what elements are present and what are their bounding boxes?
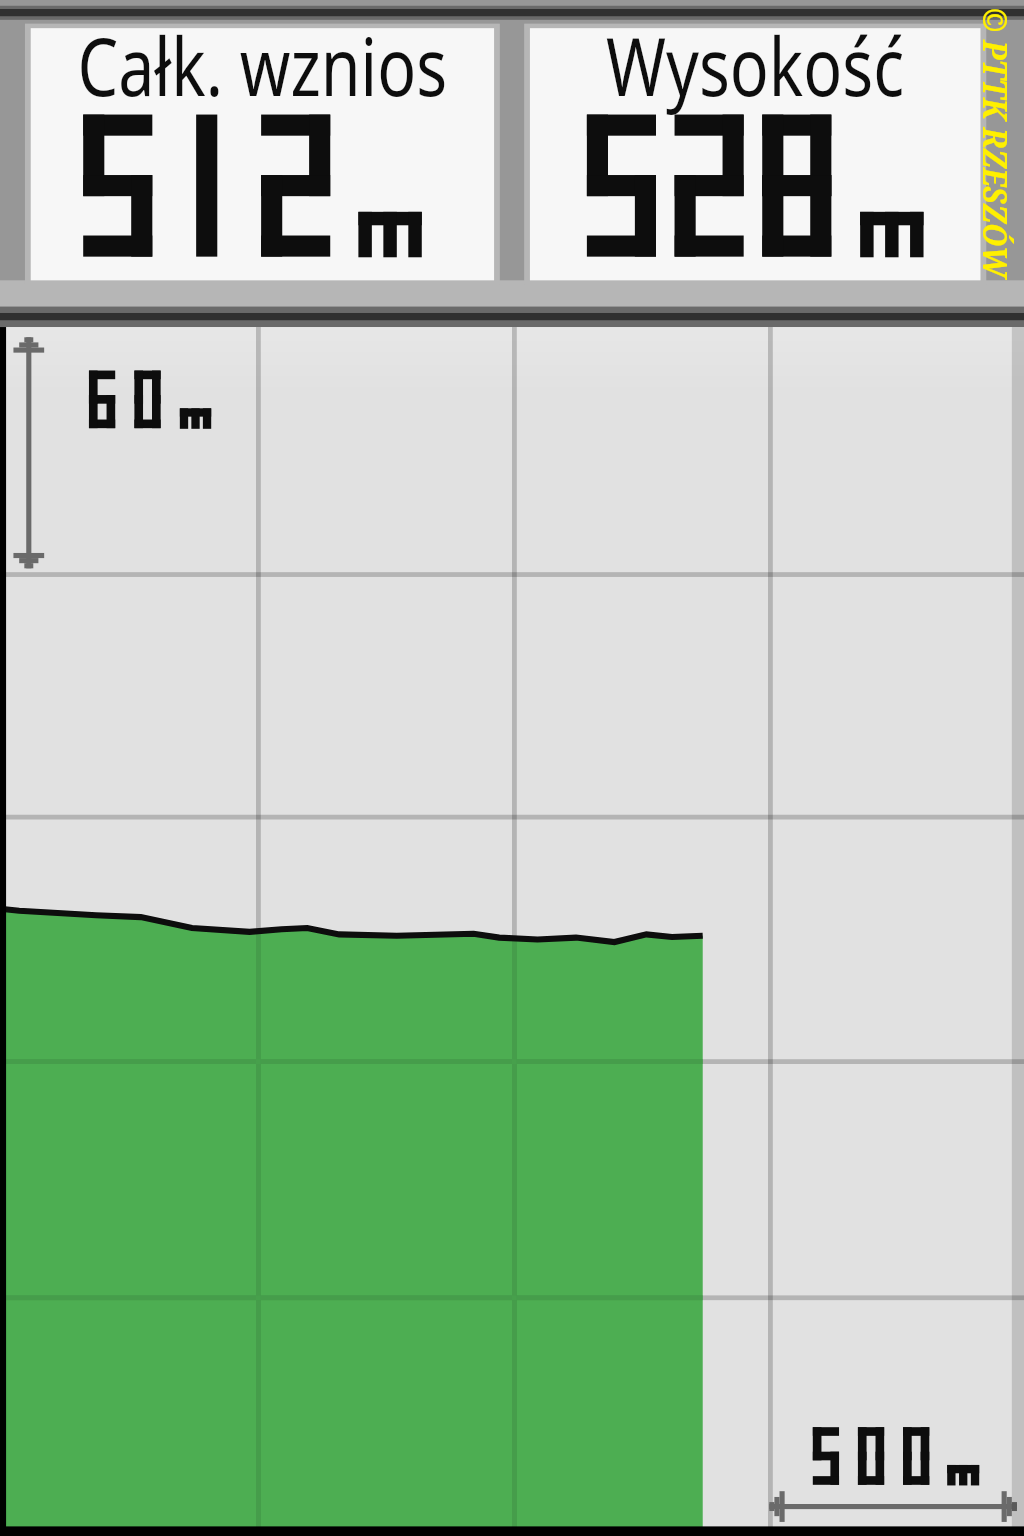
button[interactable]: Całkowity wznios 512 m [31, 28, 494, 280]
button[interactable]: Profil wysokości [0, 327, 1024, 1536]
button[interactable]: Wysokość 528 m [530, 28, 981, 280]
